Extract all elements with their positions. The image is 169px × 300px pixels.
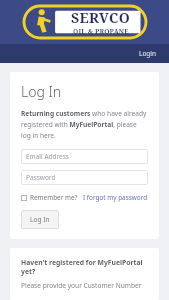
staticText: Log In [30,215,50,224]
button[interactable]: Login [127,46,169,61]
button[interactable]: Password [21,170,148,185]
staticText: Password [26,173,56,182]
staticText: OIL & PROPANE [73,27,129,36]
staticText: Email Address [26,152,69,161]
button[interactable]: Log In [21,210,59,229]
staticText: Log In [21,82,62,101]
staticText: Remember me? [30,193,78,202]
button[interactable]: Remember me? [21,193,78,202]
button[interactable]: Email Address [21,149,148,164]
staticText: Haven't registered for MyFuelPortal yet? [21,258,148,276]
other: Servco Oil & Propane [24,5,146,39]
staticText: Login [139,49,157,58]
staticText: SERVCO [71,8,131,27]
staticText: Please provide your Customer Number and … [21,281,148,290]
button[interactable]: I forgot my password [83,193,148,202]
staticText: Returning customers who have already reg… [21,109,148,140]
staticText: I forgot my password [83,193,148,202]
